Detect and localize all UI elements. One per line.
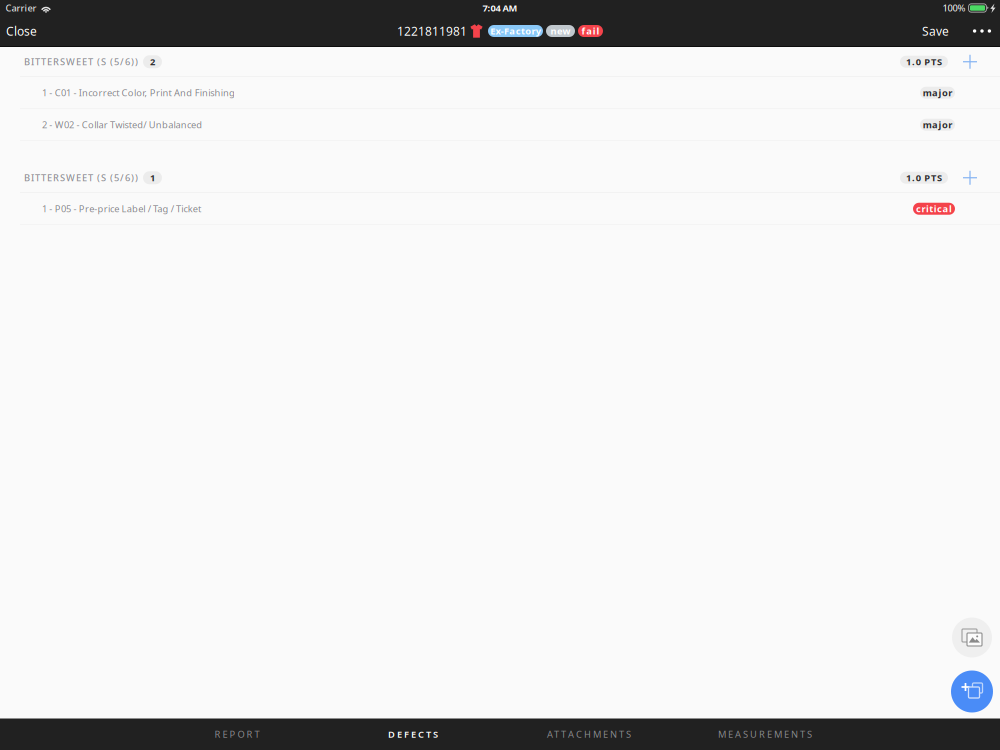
staticText: new bbox=[550, 25, 571, 37]
staticText: 2 - W02 - Collar Twisted/ Unbalanced bbox=[42, 119, 202, 131]
staticText: MEASUREMENTS bbox=[718, 728, 812, 740]
button[interactable]: REPORT bbox=[149, 719, 325, 750]
button[interactable]: Photos bbox=[952, 617, 992, 657]
staticText: BITTERSWEET (S (5/6)) bbox=[24, 56, 138, 68]
button[interactable]: Save bbox=[914, 16, 957, 46]
staticText: DEFECTS bbox=[388, 728, 438, 740]
staticText: ATTACHMENTS bbox=[547, 728, 631, 740]
button[interactable]: 2 - W02 - Collar Twisted/ Unbalanced bbox=[0, 109, 1000, 141]
staticText: Carrier bbox=[5, 2, 36, 14]
staticText: 1 - C01 - Incorrect Color, Print And Fin… bbox=[42, 87, 235, 99]
staticText: 1 bbox=[150, 172, 155, 184]
button[interactable]: 1 - P05 - Pre-price Label / Tag / Ticket bbox=[0, 193, 1000, 225]
staticText: fail bbox=[582, 25, 599, 37]
staticText: 2 bbox=[150, 56, 155, 68]
staticText: major bbox=[923, 87, 952, 99]
staticText: REPORT bbox=[214, 728, 259, 740]
staticText: Ex-Factory bbox=[490, 25, 541, 37]
button[interactable]: More options bbox=[970, 16, 994, 46]
button[interactable]: Close bbox=[0, 16, 43, 46]
staticText: 100% bbox=[943, 2, 966, 14]
staticText: 1221811981 bbox=[397, 23, 467, 39]
button[interactable]: ATTACHMENTS bbox=[501, 719, 677, 750]
staticText: 7:04 AM bbox=[482, 2, 517, 14]
staticText: Close bbox=[6, 23, 37, 39]
button[interactable]: Add attachment bbox=[951, 670, 993, 712]
staticText: 1.0 PTS bbox=[906, 172, 942, 184]
staticText: critical bbox=[916, 203, 952, 215]
button[interactable]: MEASUREMENTS bbox=[677, 719, 853, 750]
staticText: major bbox=[923, 119, 952, 131]
staticText: BITTERSWEET (S (5/6)) bbox=[24, 172, 138, 184]
staticText: Save bbox=[922, 23, 949, 39]
button[interactable]: DEFECTS bbox=[325, 719, 501, 750]
button[interactable]: Add defect bbox=[954, 166, 979, 190]
button[interactable]: Add defect bbox=[954, 50, 979, 74]
staticText: 1 - P05 - Pre-price Label / Tag / Ticket bbox=[42, 203, 201, 215]
staticText: 1.0 PTS bbox=[906, 56, 942, 68]
button[interactable]: 1 - C01 - Incorrect Color, Print And Fin… bbox=[0, 77, 1000, 109]
